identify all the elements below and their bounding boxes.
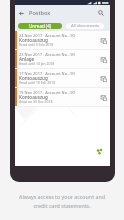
button[interactable]: 15 Nov 2017 · Account No...90 [15,88,110,106]
button[interactable]: Unread (4) [18,23,62,29]
staticText: Kontoauszug [19,94,48,100]
staticText: 15 Nov 2017 · Account No...90 [19,90,75,95]
staticText: Kontoauszug [19,75,48,81]
staticText: Read until 8 Feb 2018 [19,42,54,47]
staticText: Always access to your account and [19,193,105,200]
button[interactable]: Open document [98,73,109,84]
button[interactable]: 17 Nov 2017 · Account No...90 [15,69,110,87]
button[interactable]: All documents [66,23,104,29]
staticText: 24 Nov 2017 · Account No...90 [19,33,75,38]
button[interactable]: New message [93,145,105,157]
button[interactable]: 23 Nov 2017 · Account No...90 [15,50,110,68]
staticText: All documents [71,23,100,29]
staticText: 23 Nov 2017 · Account No...90 [19,52,75,57]
button[interactable]: 24 Nov 2017 · Account No...90 [15,31,110,49]
staticText: 17 Nov 2017 · Account No...90 [19,71,75,76]
button[interactable]: Back [16,8,26,18]
button[interactable]: Open document [98,54,109,65]
button[interactable]: Open document [98,92,109,103]
staticText: Read until 10 Feb 2018 [19,80,56,85]
staticText: Unread (4) [29,23,52,29]
staticText: Anlage [19,56,35,62]
button[interactable]: Search [96,8,106,18]
staticText: Read until 14 Jan 2018 [19,61,55,66]
staticText: Kontoauszug [19,37,48,43]
staticText: Postbox [29,9,51,17]
staticText: credit card statements. [33,202,91,209]
button[interactable]: Open document [98,35,109,46]
staticText: Read on 30 Dec 2018 [19,99,53,104]
